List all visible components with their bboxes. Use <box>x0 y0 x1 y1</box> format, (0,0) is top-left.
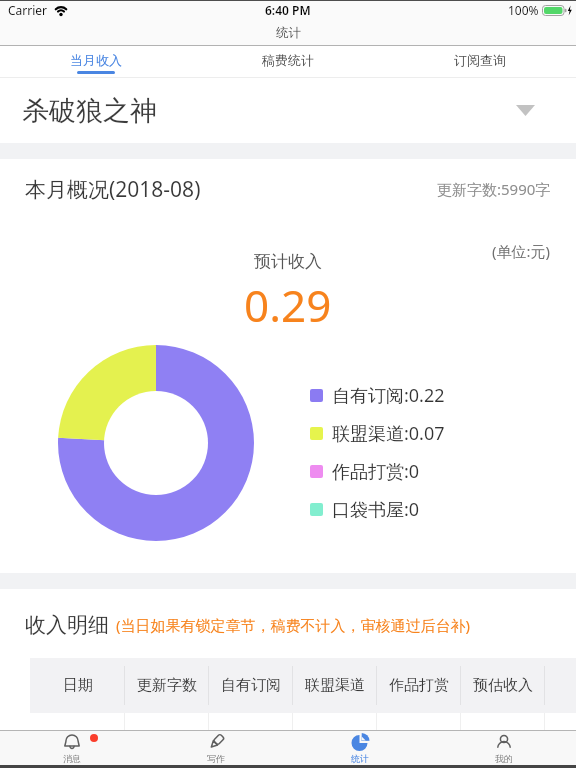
button[interactable]: 写作 <box>144 731 288 768</box>
staticText: 100% <box>508 2 539 18</box>
staticText: 本月概况(2018-08) <box>25 175 201 204</box>
staticText: 联盟渠道:0.07 <box>332 421 445 445</box>
staticText: 收入明细 <box>25 612 109 638</box>
staticText: 消息 <box>63 753 81 764</box>
staticText: 口袋书屋:0 <box>332 497 420 521</box>
staticText: 写作 <box>207 753 225 764</box>
button[interactable]: 稿费统计 <box>192 46 384 77</box>
button[interactable]: 杀破狼之神 <box>0 78 576 143</box>
staticText: 联盟渠道 <box>305 676 365 695</box>
button[interactable]: 统计 <box>288 731 432 768</box>
button[interactable]: 消息 <box>0 731 144 768</box>
staticText: 自有订阅:0.22 <box>332 383 445 407</box>
button[interactable]: 我的 <box>432 731 576 768</box>
staticText: 统计 <box>276 25 301 41</box>
staticText: 订阅查询 <box>454 52 506 68</box>
staticText: Carrier <box>8 2 48 18</box>
staticText: (单位:元) <box>492 241 551 261</box>
staticText: 当月收入 <box>70 52 122 68</box>
staticText: 预估收入 <box>473 676 533 695</box>
staticText: 更新字数:5990字 <box>437 179 551 199</box>
staticText: 作品打赏 <box>389 676 449 695</box>
staticText: 更新字数 <box>137 676 197 695</box>
staticText: 杀破狼之神 <box>22 94 157 128</box>
staticText: 自有订阅 <box>221 676 281 695</box>
staticText: 0.29 <box>244 275 332 332</box>
staticText: 日期 <box>63 676 93 695</box>
staticText: 预计收入 <box>254 251 322 272</box>
staticText: 6:40 PM <box>265 2 311 18</box>
staticText: 作品打赏:0 <box>332 459 420 483</box>
button[interactable]: 当月收入 <box>0 46 192 77</box>
staticText: 稿费统计 <box>262 52 314 68</box>
staticText: 我的 <box>495 753 513 764</box>
staticText: (当日如果有锁定章节，稿费不计入，审核通过后台补) <box>116 615 471 635</box>
staticText: 统计 <box>351 753 369 764</box>
button[interactable]: 订阅查询 <box>384 46 576 77</box>
